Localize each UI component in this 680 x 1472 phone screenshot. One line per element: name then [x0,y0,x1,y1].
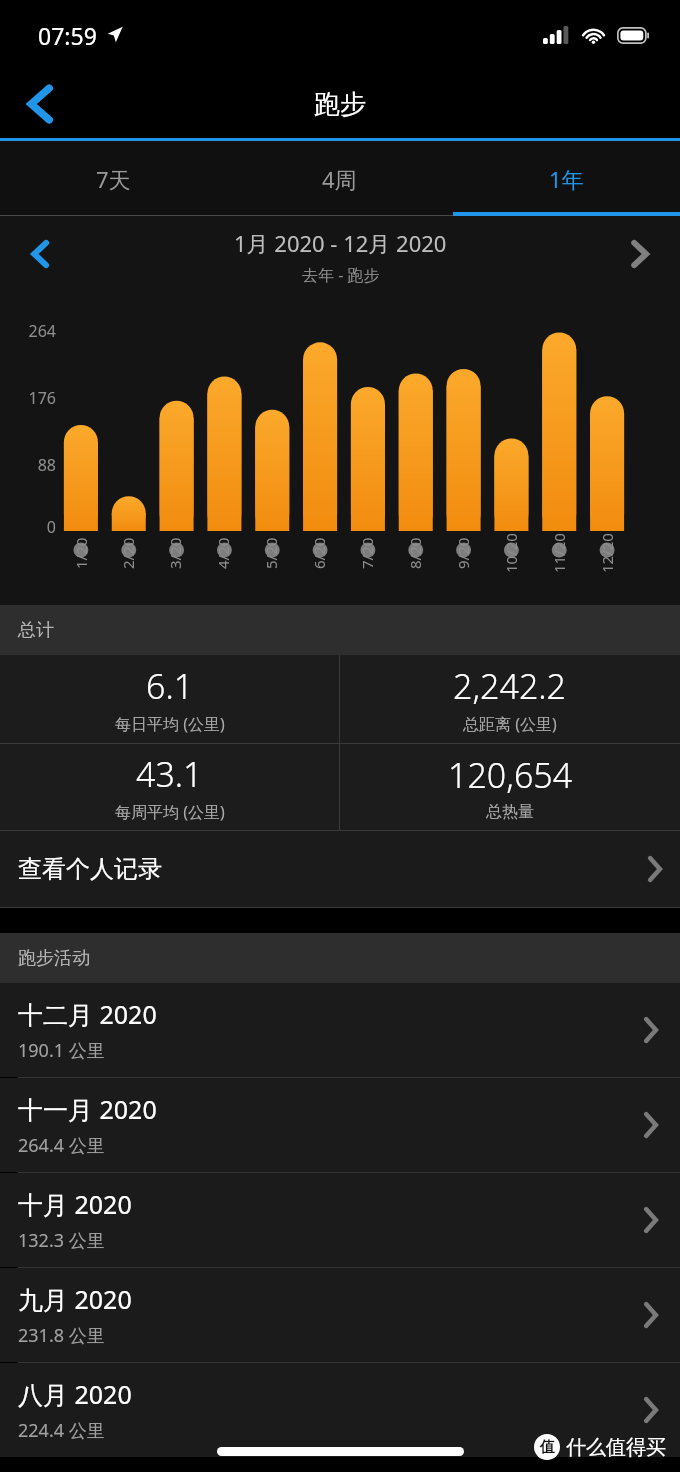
staticText: 190.1 公里 [18,1038,105,1063]
button[interactable]: 6.1 [0,655,339,743]
staticText: 0 [0,516,56,538]
staticText: 11/20 [549,533,569,573]
staticText: 九月 2020 [18,1282,132,1316]
staticText: 6.1 [146,663,194,709]
staticText: 十一月 2020 [18,1092,157,1126]
staticText: 2,242.2 [453,663,567,709]
staticText: 07:59 [38,20,97,51]
staticText: 10/20 [501,533,521,573]
staticText: 每日平均 (公里) [115,713,225,735]
staticText: 每周平均 (公里) [115,801,225,823]
staticText: 264 [0,320,56,342]
staticText: 176 [0,387,56,409]
staticText: 跑步活动 [18,947,90,970]
button[interactable]: Back [0,70,80,138]
button[interactable]: 43.1 [0,744,339,830]
button[interactable]: 查看个人记录 [0,831,680,907]
button[interactable]: 1年 [453,141,680,216]
staticText: 7/20 [357,537,377,569]
staticText: 2/20 [118,537,138,569]
staticText: 4周 [322,164,357,194]
staticText: 查看个人记录 [18,854,162,884]
staticText: 什么值得买 [566,1435,666,1460]
staticText: 12/20 [597,533,617,573]
staticText: 十二月 2020 [18,997,157,1031]
staticText: 去年 - 跑步 [302,264,380,286]
staticText: 八月 2020 [18,1377,132,1411]
staticText: 43.1 [136,751,203,797]
button[interactable]: 十月 2020 [0,1173,680,1267]
button[interactable]: 十一月 2020 [0,1078,680,1172]
staticText: 4/20 [213,537,233,569]
button[interactable]: 7天 [0,141,226,216]
staticText: 1/20 [71,537,91,569]
staticText: 跑步 [314,88,366,121]
staticText: 3/20 [165,537,185,569]
staticText: 1年 [549,164,584,194]
staticText: 总距离 (公里) [463,713,557,735]
staticText: 224.4 公里 [18,1418,105,1443]
button[interactable]: 八月 2020 [0,1363,680,1457]
staticText: 十月 2020 [18,1187,132,1221]
button[interactable]: 2,242.2 [340,655,680,743]
staticText: 7天 [96,164,131,194]
button[interactable]: 4周 [226,141,453,216]
button[interactable]: 九月 2020 [0,1268,680,1362]
button[interactable]: 十二月 2020 [0,983,680,1077]
button[interactable]: Next period [608,222,672,286]
staticText: 132.3 公里 [18,1228,105,1253]
staticText: 6/20 [309,537,329,569]
staticText: 120,654 [448,752,573,798]
staticText: 5/20 [261,537,281,569]
button[interactable]: 120,654 [340,744,680,830]
button[interactable]: Previous period [8,222,72,286]
staticText: 8/20 [405,537,425,569]
staticText: 总计 [18,619,54,642]
staticText: 88 [0,454,56,476]
staticText: 9/20 [453,537,473,569]
staticText: 231.8 公里 [18,1323,105,1348]
staticText: 总热量 [486,802,534,822]
staticText: 264.4 公里 [18,1133,105,1158]
staticText: 值 [540,1438,555,1457]
staticText: 1月 2020 - 12月 2020 [234,228,447,258]
